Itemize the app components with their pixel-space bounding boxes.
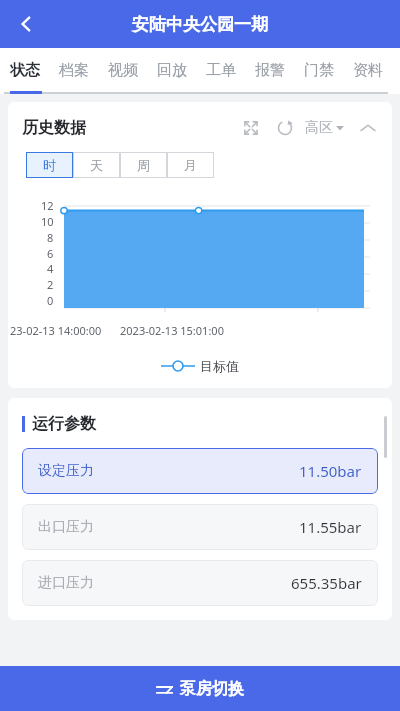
button[interactable]: 时	[26, 152, 73, 178]
staticText: 月	[184, 157, 197, 173]
staticText: 10	[41, 214, 54, 229]
staticText: 时	[43, 157, 56, 173]
staticText: 设定压力	[38, 462, 94, 480]
staticText: 4	[47, 261, 54, 276]
button[interactable]: Back	[6, 4, 46, 44]
staticText: 运行参数	[32, 414, 96, 434]
button[interactable]: Refresh	[273, 116, 297, 140]
staticText: 23-02-13 14:00:00	[10, 323, 102, 338]
staticText: 655.35bar	[291, 573, 362, 593]
staticText: 档案	[59, 61, 89, 80]
staticText: 视频	[108, 61, 138, 80]
staticText: 0	[47, 293, 54, 308]
staticText: 目标值	[200, 358, 239, 374]
staticText: 2023-02-13 15:01:00	[120, 323, 224, 338]
staticText: 工单	[206, 61, 236, 80]
staticText: 门禁	[304, 61, 334, 80]
staticText: 天	[90, 157, 103, 173]
staticText: 周	[137, 157, 150, 173]
staticText: 历史数据	[22, 118, 86, 138]
button[interactable]: Collapse	[356, 116, 380, 140]
staticText: 高区	[305, 119, 333, 137]
staticText: 8	[47, 230, 54, 245]
staticText: 6	[47, 246, 54, 261]
button[interactable]: Fullscreen	[239, 116, 263, 140]
button[interactable]: 状态	[10, 48, 40, 92]
button[interactable]: 资料	[353, 48, 383, 92]
button[interactable]: 高区	[305, 119, 344, 137]
staticText: 12	[41, 198, 54, 213]
button[interactable]: 出口压力	[22, 504, 378, 550]
staticText: 11.50bar	[299, 461, 362, 481]
staticText: 泵房切换	[180, 679, 244, 699]
button[interactable]: 回放	[157, 48, 187, 92]
staticText: 报警	[255, 61, 285, 80]
staticText: 状态	[10, 61, 40, 80]
staticText: 2	[47, 277, 54, 292]
button[interactable]: 档案	[59, 48, 89, 92]
button[interactable]: 设定压力	[22, 448, 378, 494]
button[interactable]: 门禁	[304, 48, 334, 92]
staticText: 回放	[157, 61, 187, 80]
staticText: 出口压力	[38, 518, 94, 536]
staticText: 11.55bar	[299, 517, 362, 537]
button[interactable]: 工单	[206, 48, 236, 92]
staticText: 进口压力	[38, 574, 94, 592]
button[interactable]: 视频	[108, 48, 138, 92]
button[interactable]: 进口压力	[22, 560, 378, 606]
button[interactable]: 天	[73, 152, 120, 178]
button[interactable]: 泵房切换	[0, 666, 400, 711]
button[interactable]: 报警	[255, 48, 285, 92]
staticText: 资料	[353, 61, 383, 80]
button[interactable]: 月	[167, 152, 214, 178]
staticText: 安陆中央公园一期	[132, 14, 268, 35]
button[interactable]: 周	[120, 152, 167, 178]
